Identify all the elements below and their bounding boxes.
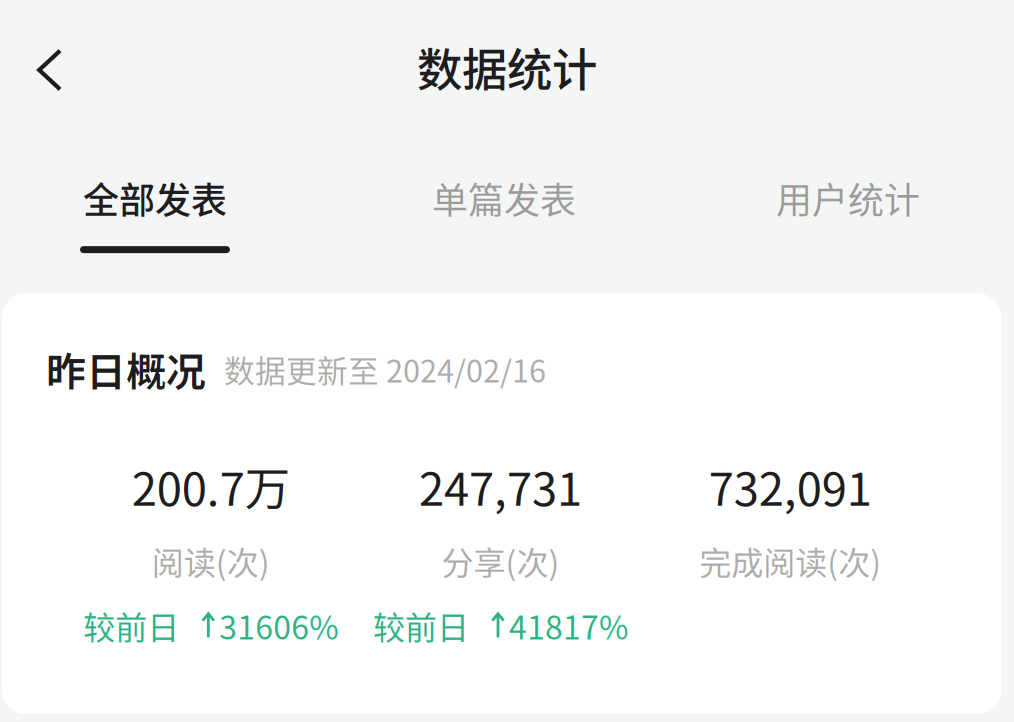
staticText: 数据更新至 2024/02/16 [224, 347, 546, 391]
staticText: 31606% [219, 602, 338, 649]
staticText: 247,731 [419, 453, 582, 519]
staticText: 数据统计 [417, 34, 597, 100]
staticText: 阅读(次) [152, 538, 270, 584]
staticText: 用户统计 [776, 172, 920, 224]
staticText: 732,091 [709, 453, 872, 519]
button[interactable]: 用户统计 [728, 172, 968, 253]
staticText: 200.7万 [132, 453, 290, 519]
staticText: 较前日 [83, 602, 179, 649]
button[interactable]: 单篇发表 [374, 172, 634, 253]
staticText: 全部发表 [83, 172, 227, 224]
button[interactable]: Back [0, 26, 84, 107]
staticText: 分享(次) [441, 538, 559, 584]
staticText: 41817% [509, 602, 628, 649]
staticText: 单篇发表 [432, 172, 576, 224]
staticText: 较前日 [373, 602, 469, 649]
staticText: 完成阅读(次) [699, 538, 881, 584]
button[interactable]: 全部发表 [0, 172, 310, 253]
staticText: 昨日概况 [46, 340, 206, 398]
